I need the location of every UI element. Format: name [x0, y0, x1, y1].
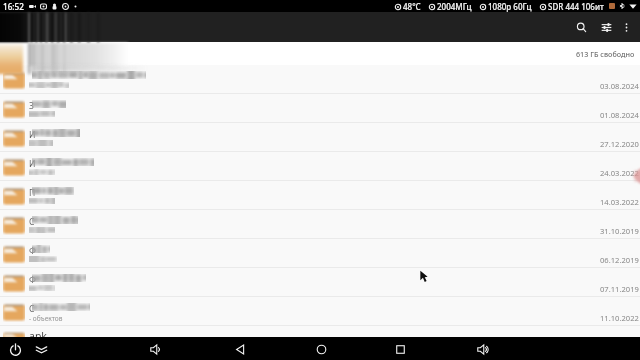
- button[interactable]: Sort: [593, 14, 619, 40]
- staticText: 16:52: [3, 1, 24, 12]
- button[interactable]: Ф: [0, 239, 640, 268]
- staticText: З: [29, 100, 34, 112]
- staticText: 1080p 60Гц: [488, 1, 532, 12]
- button[interactable]: 03.08.2024: [0, 65, 640, 94]
- button[interactable]: П: [0, 181, 640, 210]
- staticText: С: [29, 216, 35, 228]
- staticText: Ф: [29, 274, 36, 286]
- staticText: SDR 444 106ит: [548, 1, 604, 12]
- staticText: С: [29, 303, 35, 315]
- button[interactable]: З: [0, 94, 640, 123]
- staticText: - объектов: [29, 314, 63, 323]
- staticText: 31.10.2019: [600, 226, 639, 236]
- staticText: 613 ГБ свободно: [576, 49, 635, 59]
- staticText: 07.11.2019: [600, 284, 639, 294]
- button[interactable]: apk: [0, 326, 640, 340]
- button[interactable]: С: [0, 210, 640, 239]
- staticText: 2004МГц: [437, 1, 472, 12]
- button[interactable]: Power: [5, 339, 25, 359]
- staticText: Ф: [29, 245, 36, 257]
- staticText: 14.03.2022: [600, 197, 639, 207]
- button[interactable]: Search: [568, 14, 594, 40]
- staticText: 11.10.2022: [600, 313, 639, 323]
- button[interactable]: Volume up: [473, 339, 493, 359]
- button[interactable]: С: [0, 297, 640, 326]
- staticText: 03.08.2024: [600, 81, 639, 91]
- staticText: 27.12.2020: [600, 139, 639, 149]
- staticText: И: [29, 129, 36, 141]
- button[interactable]: Back: [230, 339, 250, 359]
- button[interactable]: Recents: [390, 339, 410, 359]
- button[interactable]: И: [0, 152, 640, 181]
- staticText: apk: [29, 329, 47, 343]
- button[interactable]: Ф: [0, 268, 640, 297]
- staticText: И: [29, 158, 36, 170]
- staticText: П: [29, 187, 36, 199]
- button[interactable]: More options: [613, 14, 639, 40]
- staticText: 48°C: [403, 1, 421, 12]
- staticText: 06.12.2019: [600, 255, 639, 265]
- button[interactable]: Collapse: [31, 339, 51, 359]
- staticText: 01.08.2024: [600, 110, 639, 120]
- button[interactable]: И: [0, 123, 640, 152]
- button[interactable]: Home: [311, 339, 331, 359]
- staticText: 24.03.2022: [600, 168, 639, 178]
- button[interactable]: Volume down: [146, 339, 166, 359]
